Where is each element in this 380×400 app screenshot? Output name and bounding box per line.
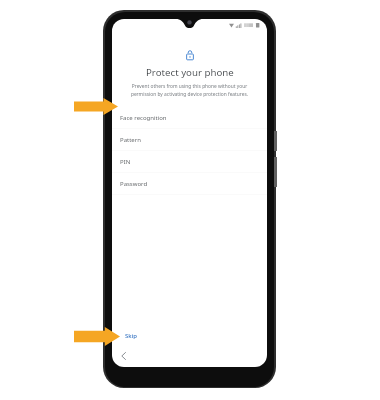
button[interactable]: Password (112, 173, 267, 195)
staticText: PIN (120, 158, 131, 166)
staticText: Face recognition (120, 114, 167, 122)
button[interactable]: Face recognition (112, 107, 267, 129)
staticText: Prevent others from using this phone wit… (128, 83, 251, 97)
button[interactable]: PIN (112, 151, 267, 173)
button[interactable]: Pattern (112, 129, 267, 151)
staticText: Skip (125, 332, 137, 340)
staticText: Protect your phone (146, 66, 234, 79)
button[interactable]: Skip (120, 328, 142, 344)
staticText: Pattern (120, 136, 141, 144)
button[interactable]: Back (114, 348, 132, 364)
staticText: Password (120, 180, 148, 188)
